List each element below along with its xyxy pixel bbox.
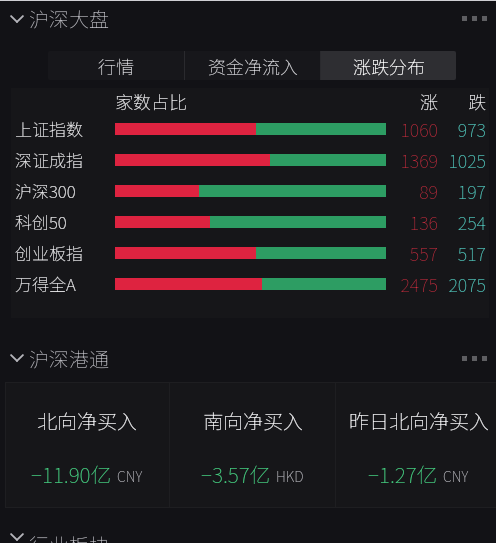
staticText: 深证成指 [15, 147, 115, 172]
staticText: 557 [390, 240, 438, 266]
staticText: 1060 [390, 116, 438, 142]
button[interactable]: 昨日北向净买入 [336, 382, 496, 508]
button[interactable]: 南向净买入 [170, 382, 335, 508]
staticText: 136 [390, 209, 438, 235]
staticText: 行业板块 [29, 530, 109, 543]
staticText: 1369 [390, 147, 438, 173]
staticText: 北向净买入 [37, 406, 137, 435]
button[interactable]: 涨跌分布 [321, 51, 456, 80]
staticText: −11.90亿 [31, 459, 112, 489]
staticText: 517 [438, 240, 486, 266]
staticText: 万得全A [15, 271, 115, 296]
button[interactable]: 行情 [48, 51, 184, 80]
staticText: 南向净买入 [203, 406, 303, 435]
staticText: 1025 [438, 147, 486, 173]
button[interactable]: 沪深300 [11, 175, 489, 206]
staticText: 沪深港通 [29, 344, 109, 373]
staticText: 89 [390, 178, 438, 204]
staticText: CNY [117, 466, 143, 486]
staticText: 上证指数 [15, 116, 115, 141]
button[interactable]: 北向净买入 [5, 382, 169, 508]
staticText: CNY [443, 466, 469, 486]
button[interactable]: More options [454, 8, 496, 29]
staticText: 涨跌分布 [353, 53, 425, 79]
button[interactable]: 万得全A [11, 268, 489, 299]
staticText: HKD [276, 466, 304, 486]
staticText: 973 [438, 116, 486, 142]
staticText: 涨 [390, 88, 438, 113]
staticText: 家数占比 [115, 88, 187, 113]
button[interactable]: 创业板指 [11, 237, 489, 268]
staticText: −1.27亿 [368, 459, 438, 489]
staticText: 昨日北向净买入 [349, 406, 489, 435]
staticText: −3.57亿 [201, 459, 271, 489]
staticText: 197 [438, 178, 486, 204]
staticText: 沪深300 [15, 178, 115, 203]
staticText: 254 [438, 209, 486, 235]
staticText: 2075 [438, 271, 486, 297]
staticText: 创业板指 [15, 240, 115, 265]
staticText: 沪深大盘 [29, 4, 109, 33]
button[interactable]: More options [454, 348, 496, 369]
button[interactable]: 上证指数 [11, 113, 489, 144]
button[interactable]: 沪深大盘 [0, 1, 496, 36]
button[interactable]: 科创50 [11, 206, 489, 237]
button[interactable]: 行业板块 [0, 530, 496, 543]
button[interactable]: 资金净流入 [185, 51, 320, 80]
staticText: 行情 [98, 53, 134, 79]
staticText: 科创50 [15, 209, 115, 234]
button[interactable]: 沪深港通 [0, 339, 496, 377]
staticText: 2475 [390, 271, 438, 297]
staticText: 跌 [438, 88, 486, 113]
staticText: 资金净流入 [208, 53, 298, 79]
button[interactable]: 深证成指 [11, 144, 489, 175]
